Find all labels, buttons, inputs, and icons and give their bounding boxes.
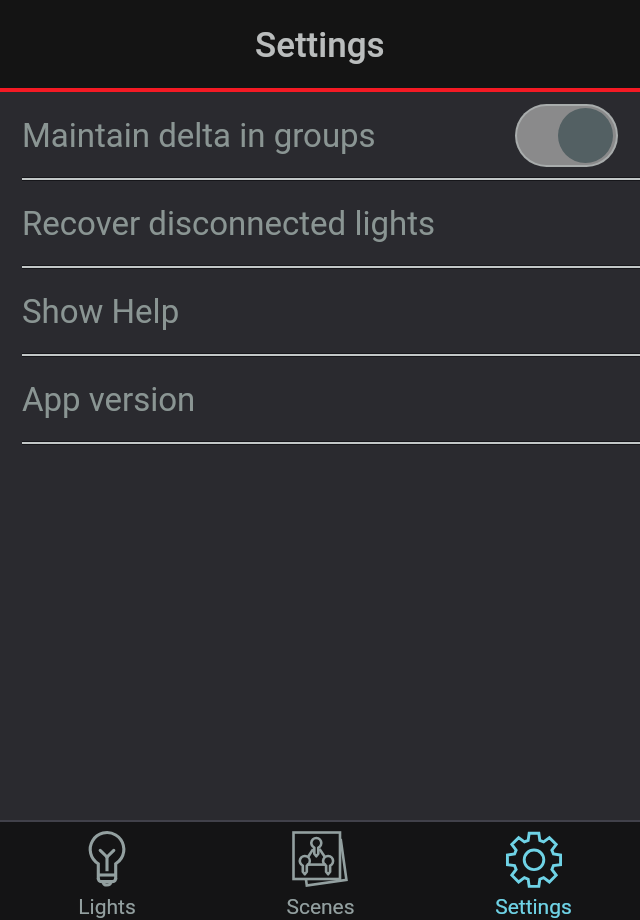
button[interactable]: Show Help (0, 268, 640, 356)
button[interactable]: App version (0, 356, 640, 444)
staticText: Maintain delta in groups (22, 116, 376, 155)
staticText: Recover disconnected lights (22, 204, 435, 243)
button[interactable]: Lights tab (0, 822, 214, 920)
staticText: Settings (255, 25, 385, 66)
button[interactable]: Maintain delta in groups switch (517, 106, 616, 165)
button[interactable]: Scenes tab (214, 822, 427, 920)
button[interactable]: Settings tab (427, 822, 640, 920)
staticText: Lights (78, 895, 136, 920)
staticText: App version (22, 380, 196, 419)
button[interactable]: Recover disconnected lights (0, 180, 640, 268)
button[interactable]: Maintain delta in groups (0, 92, 640, 180)
staticText: Settings (495, 895, 572, 920)
staticText: Scenes (286, 895, 355, 920)
staticText: Show Help (22, 292, 180, 331)
